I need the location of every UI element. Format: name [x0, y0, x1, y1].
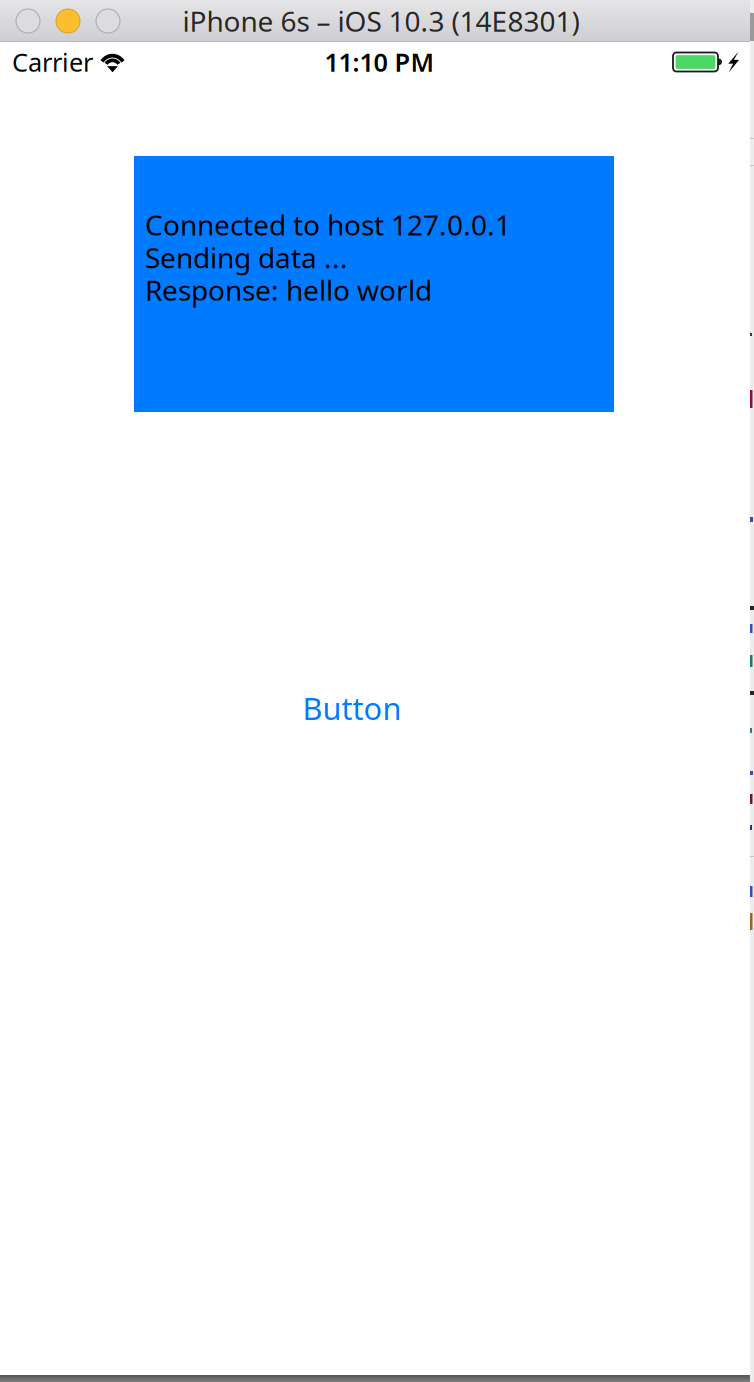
staticText: Sending data ...: [145, 239, 348, 276]
staticText: iPhone 6s – iOS 10.3 (14E8301): [182, 2, 579, 40]
button[interactable]: Close: [16, 9, 40, 33]
staticText: Connected to host 127.0.0.1: [145, 206, 511, 243]
staticText: Carrier: [12, 45, 93, 79]
staticText: 11:10 PM: [324, 45, 434, 79]
staticText: Button: [302, 688, 401, 728]
button[interactable]: Zoom: [96, 9, 120, 33]
staticText: Response: hello world: [145, 271, 432, 309]
button[interactable]: Minimize: [56, 9, 80, 33]
button[interactable]: Button: [295, 682, 409, 734]
